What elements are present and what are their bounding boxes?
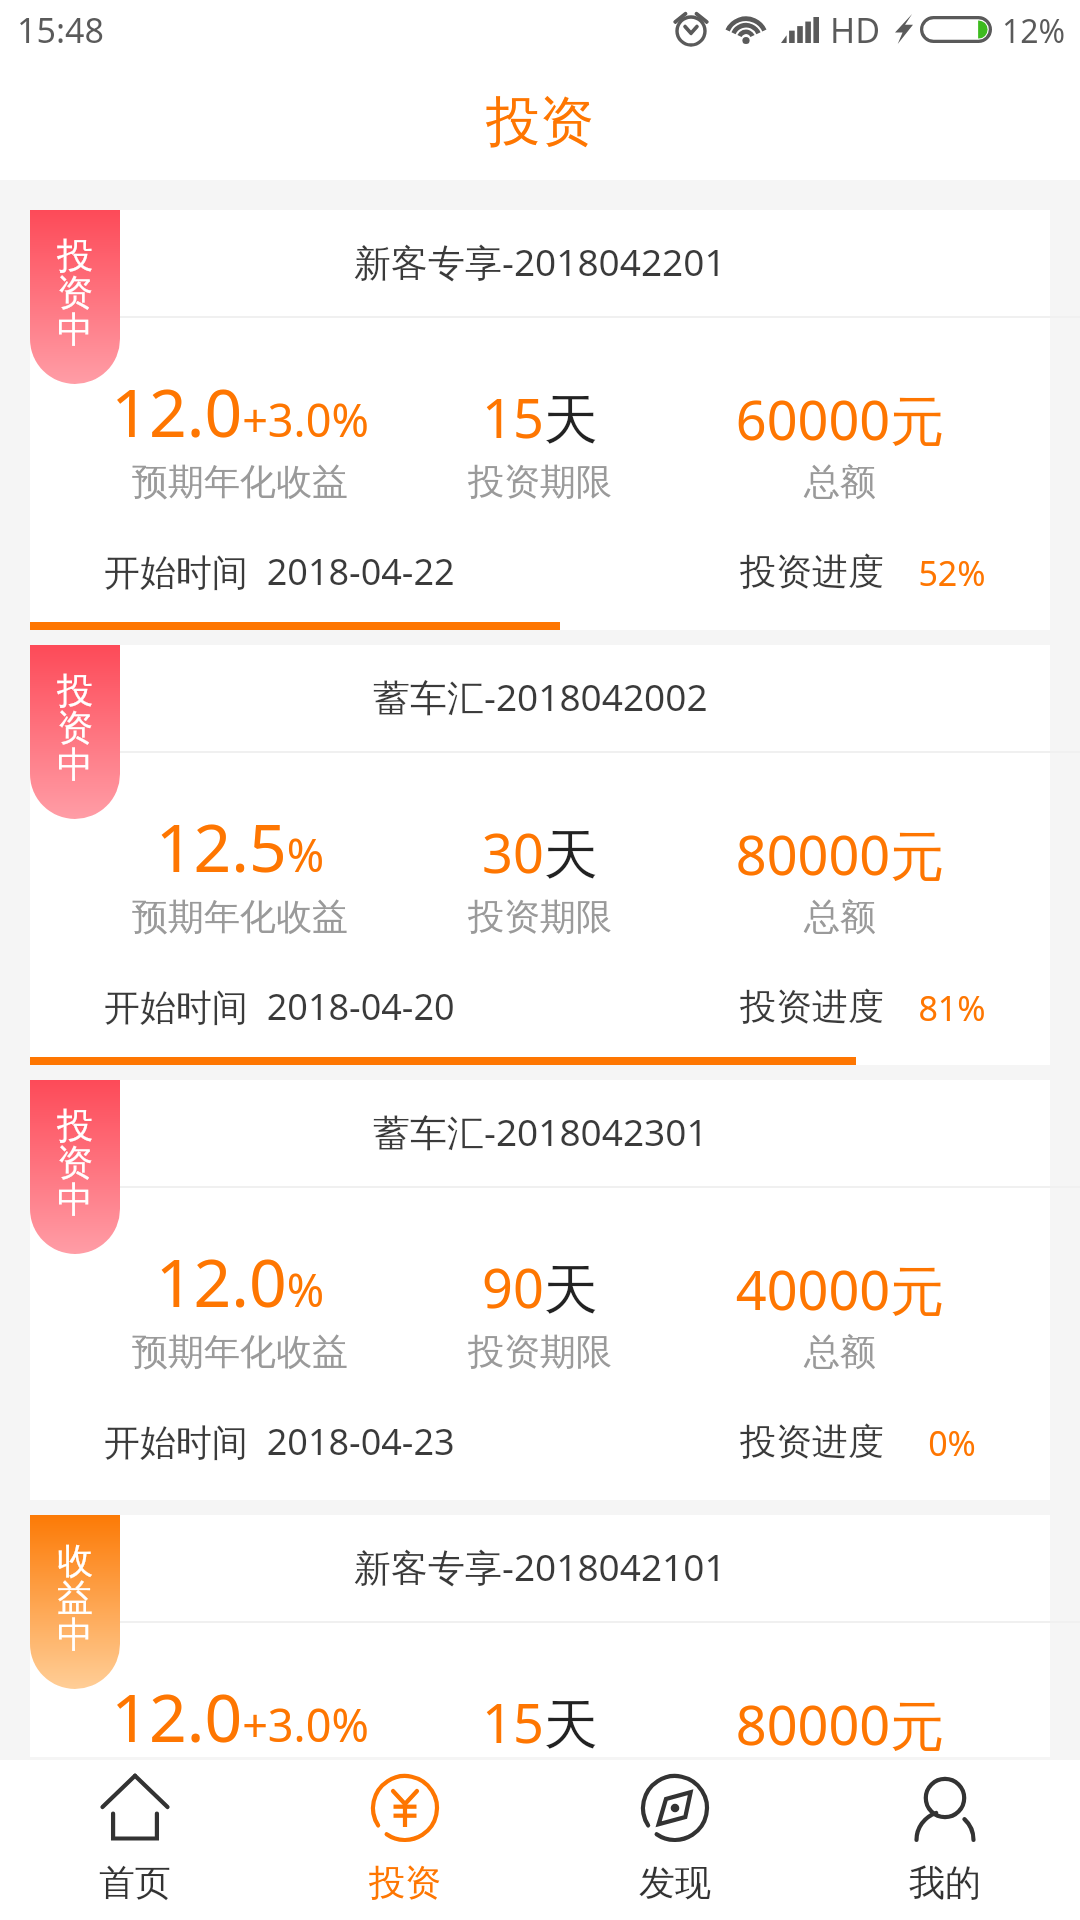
- other: 发现: [642, 1775, 708, 1841]
- staticText: 40000元: [690, 1252, 990, 1326]
- staticText: 投资期限: [390, 894, 690, 939]
- staticText: 投资: [486, 88, 594, 156]
- staticText: 52%: [852, 550, 1052, 596]
- staticText: 资: [30, 1140, 120, 1185]
- staticText: 投资期限: [390, 1329, 690, 1374]
- staticText: 投: [30, 668, 120, 713]
- staticText: 15天: [390, 1685, 690, 1759]
- staticText: 资: [30, 270, 120, 315]
- other: 投资: [372, 1775, 438, 1841]
- staticText: 中: [30, 307, 120, 352]
- staticText: 投: [30, 233, 120, 278]
- staticText: 总额: [690, 459, 990, 504]
- staticText: 投资进度: [740, 984, 884, 1029]
- staticText: 80000元: [690, 1687, 990, 1760]
- button[interactable]: 首页: [0, 1760, 270, 1920]
- button[interactable]: 新客专享-2018042101: [30, 1515, 1050, 1760]
- button[interactable]: 蓄车汇-2018042002: [30, 645, 1050, 1065]
- staticText: 投资进度: [740, 1419, 884, 1464]
- staticText: 30天: [390, 815, 690, 889]
- staticText: 投: [30, 1103, 120, 1148]
- staticText: 我的: [909, 1860, 981, 1905]
- staticText: 12.0+3.0%: [90, 366, 390, 456]
- staticText: 开始时间 2018-04-20: [104, 982, 455, 1031]
- staticText: 中: [30, 1612, 120, 1657]
- button[interactable]: 新客专享-2018042201: [30, 210, 1050, 630]
- button[interactable]: 我的: [810, 1760, 1080, 1920]
- staticText: 新客专享-2018042101: [354, 1541, 726, 1592]
- staticText: 开始时间 2018-04-23: [104, 1417, 455, 1466]
- staticText: 81%: [852, 985, 1052, 1031]
- staticText: 益: [30, 1575, 120, 1620]
- staticText: 80000元: [690, 817, 990, 891]
- staticText: 预期年化收益: [90, 1329, 390, 1374]
- staticText: 中: [30, 742, 120, 787]
- staticText: 新客专享-2018042201: [354, 236, 726, 287]
- staticText: 90天: [390, 1250, 690, 1324]
- staticText: 蓄车汇-2018042002: [373, 671, 708, 722]
- staticText: 投资期限: [390, 459, 690, 504]
- staticText: 蓄车汇-2018042301: [373, 1106, 708, 1157]
- staticText: 预期年化收益: [90, 894, 390, 939]
- staticText: 总额: [690, 1329, 990, 1374]
- staticText: 60000元: [690, 382, 990, 456]
- staticText: 预期年化收益: [90, 459, 390, 504]
- staticText: 12.5%: [90, 801, 390, 891]
- staticText: 12.0%: [90, 1236, 390, 1326]
- other: 首页: [102, 1775, 168, 1841]
- staticText: 投资进度: [740, 549, 884, 594]
- button[interactable]: 发现: [540, 1760, 810, 1920]
- staticText: 首页: [99, 1860, 171, 1905]
- staticText: 0%: [852, 1420, 1052, 1466]
- staticText: 收: [30, 1538, 120, 1583]
- staticText: 总额: [690, 894, 990, 939]
- staticText: HD: [830, 7, 881, 53]
- staticText: 发现: [639, 1860, 711, 1905]
- other: 我的: [912, 1775, 978, 1841]
- staticText: 资: [30, 705, 120, 750]
- staticText: 12%: [1002, 9, 1066, 53]
- staticText: 15天: [390, 380, 690, 454]
- button[interactable]: 蓄车汇-2018042301: [30, 1080, 1050, 1500]
- staticText: 15:48: [17, 7, 104, 53]
- staticText: 12.0+3.0%: [90, 1671, 390, 1760]
- staticText: 中: [30, 1177, 120, 1222]
- staticText: 投资: [369, 1860, 441, 1905]
- button[interactable]: 投资: [270, 1760, 540, 1920]
- staticText: 开始时间 2018-04-22: [104, 547, 455, 596]
